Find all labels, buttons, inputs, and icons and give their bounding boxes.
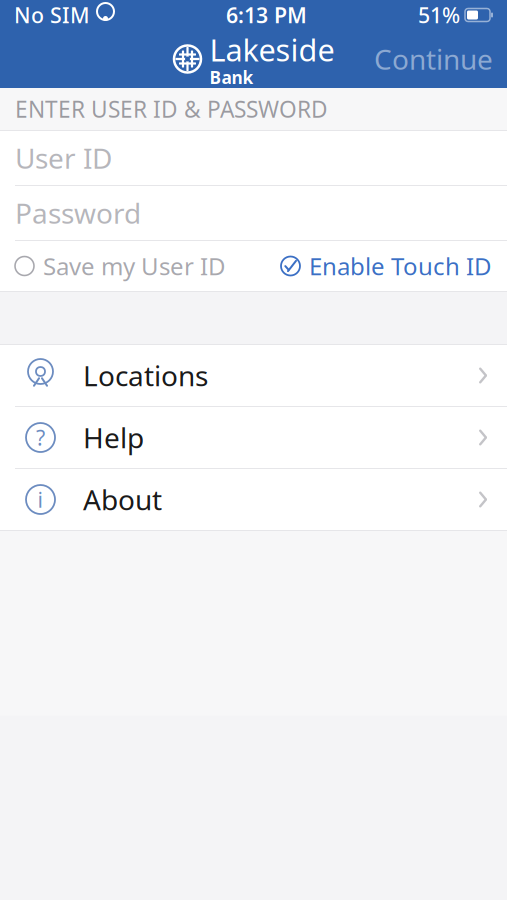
button[interactable]: Password (0, 186, 507, 240)
staticText: Help (83, 419, 144, 456)
staticText: Enable Touch ID (309, 250, 492, 282)
button[interactable]: Enable Touch ID (280, 242, 507, 290)
button[interactable]: User ID (0, 131, 507, 185)
staticText: ? (36, 423, 45, 452)
staticText: 6:13 PM (226, 1, 307, 29)
staticText: Continue (374, 40, 493, 78)
staticText: 51% (418, 1, 460, 29)
staticText: i (37, 485, 43, 514)
staticText: No SIM (14, 1, 90, 29)
staticText: Password (15, 194, 141, 232)
staticText: Lakeside (209, 29, 334, 70)
staticText: Save my User ID (43, 250, 226, 282)
button[interactable]: i (0, 469, 507, 530)
button[interactable]: Locations (0, 345, 507, 406)
button[interactable]: ? (0, 407, 507, 468)
staticText: ENTER USER ID & PASSWORD (15, 94, 328, 124)
staticText: About (83, 481, 162, 518)
button[interactable]: Continue (360, 30, 507, 88)
button[interactable]: Save my User ID (0, 242, 226, 290)
staticText: Locations (83, 357, 208, 394)
staticText: Bank (209, 66, 253, 89)
staticText: User ID (15, 139, 112, 177)
